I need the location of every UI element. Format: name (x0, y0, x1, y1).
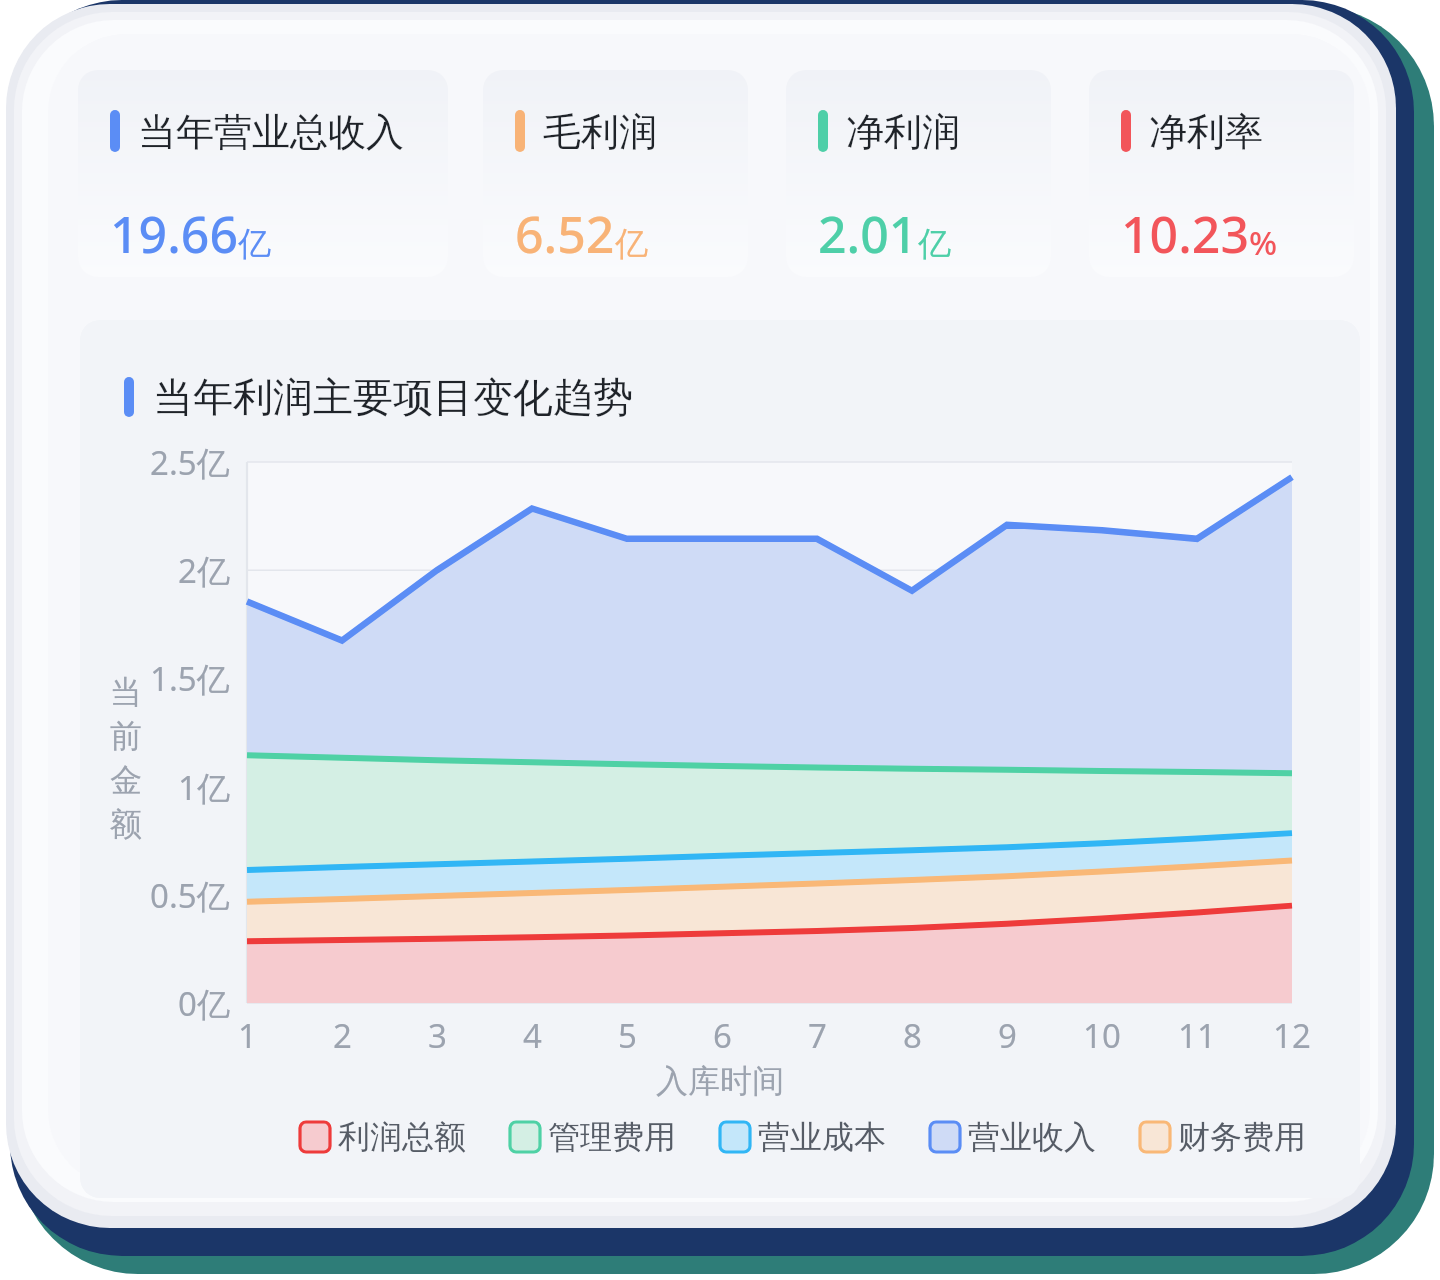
staticText: 8 (903, 1013, 922, 1057)
staticText: 1 (238, 1013, 257, 1057)
button[interactable]: 财务费用 (1140, 1112, 1306, 1162)
staticText: 1亿 (178, 765, 230, 810)
staticText: 3 (428, 1013, 447, 1057)
staticText: 财务费用 (1178, 1117, 1306, 1157)
staticText: 10 (1083, 1013, 1121, 1057)
staticText: 额 (110, 804, 142, 848)
staticText: 4 (523, 1013, 542, 1057)
staticText: 12 (1273, 1013, 1311, 1057)
staticText: 0亿 (178, 981, 230, 1026)
staticText: 营业成本 (758, 1117, 886, 1157)
staticText: 10.23 (1121, 200, 1249, 268)
staticText: 前 (110, 716, 142, 760)
staticText: 金 (110, 760, 142, 804)
staticText: % (1249, 220, 1278, 265)
button[interactable]: 毛利润 (483, 70, 748, 277)
button[interactable]: 净利润 (786, 70, 1051, 277)
staticText: 2 (333, 1013, 352, 1057)
staticText: 当年利润主要项目变化趋势 (153, 372, 633, 422)
staticText: 亿 (615, 223, 648, 265)
button[interactable]: 营业收入 (930, 1112, 1096, 1162)
button[interactable]: 管理费用 (510, 1112, 676, 1162)
staticText: 亿 (238, 223, 271, 265)
staticText: 11 (1178, 1013, 1216, 1057)
staticText: 19.66 (110, 200, 238, 268)
staticText: 亿 (918, 223, 951, 265)
staticText: 当 (110, 672, 142, 716)
staticText: 利润总额 (338, 1117, 466, 1157)
staticText: 6 (713, 1013, 732, 1057)
staticText: 5 (618, 1013, 637, 1057)
staticText: 9 (998, 1013, 1017, 1057)
staticText: 当年营业总收入 (138, 108, 404, 154)
staticText: 净利率 (1149, 108, 1263, 154)
staticText: 1.5亿 (150, 656, 230, 701)
button[interactable]: 营业成本 (720, 1112, 886, 1162)
button[interactable] (80, 320, 1360, 1198)
staticText: 2.5亿 (150, 440, 230, 485)
staticText: 2亿 (178, 548, 230, 593)
staticText: 6.52 (515, 200, 615, 268)
staticText: 管理费用 (548, 1117, 676, 1157)
button[interactable]: 利润总额 (300, 1112, 466, 1162)
staticText: 0.5亿 (150, 873, 230, 918)
button[interactable]: 净利率 (1089, 70, 1354, 277)
staticText: 入库时间 (656, 1061, 784, 1101)
staticText: 7 (808, 1013, 827, 1057)
staticText: 2.01 (818, 200, 918, 268)
button[interactable]: 当年营业总收入 (78, 70, 448, 277)
staticText: 营业收入 (968, 1117, 1096, 1157)
staticText: 毛利润 (543, 108, 657, 154)
staticText: 净利润 (846, 108, 960, 154)
